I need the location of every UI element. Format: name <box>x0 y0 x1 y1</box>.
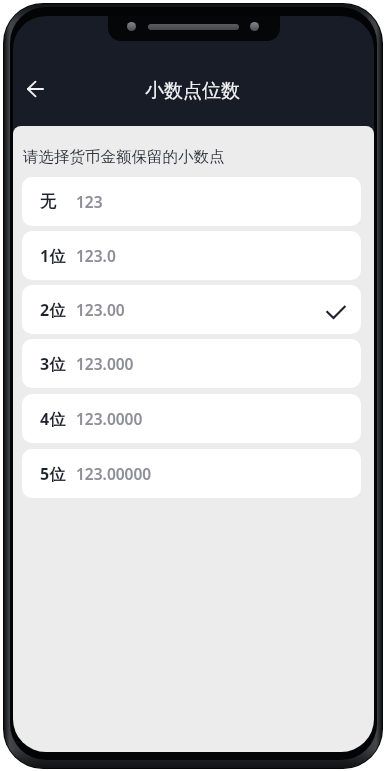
button[interactable]: Back <box>14 68 56 110</box>
button[interactable]: 无 <box>22 177 361 226</box>
button[interactable]: 5位 <box>22 449 361 498</box>
button[interactable]: 1位 <box>22 231 361 280</box>
staticText: 无 <box>40 192 56 212</box>
button[interactable]: 4位 <box>22 394 361 443</box>
staticText: 2位 <box>40 299 66 321</box>
staticText: 5位 <box>40 463 66 485</box>
staticText: 3位 <box>40 353 66 375</box>
staticText: 123 <box>76 191 103 212</box>
staticText: 123.0000 <box>76 408 143 429</box>
staticText: 123.00000 <box>76 463 152 484</box>
staticText: 1位 <box>40 245 66 267</box>
staticText: 123.000 <box>76 353 134 374</box>
staticText: 123.00 <box>76 299 125 320</box>
staticText: 小数点位数 <box>145 79 240 103</box>
staticText: 123.0 <box>76 245 116 266</box>
button[interactable]: 2位 <box>22 285 361 334</box>
staticText: 4位 <box>40 408 66 430</box>
staticText: 请选择货币金额保留的小数点 <box>23 147 225 167</box>
button[interactable]: 3位 <box>22 339 361 388</box>
